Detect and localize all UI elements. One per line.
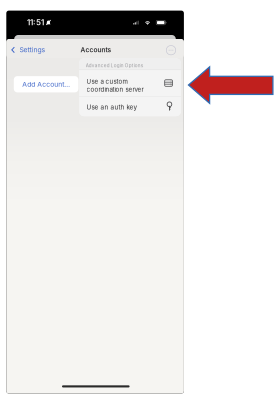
button[interactable]: Use a custom (79, 70, 181, 96)
button[interactable]: Add Account… (14, 76, 78, 92)
staticText: Use a custom (86, 78, 127, 85)
staticText: Accounts (80, 46, 111, 54)
button[interactable]: More options (164, 43, 178, 57)
staticText: Advanced Login Options (86, 63, 143, 68)
button[interactable]: Use an auth key (79, 96, 181, 116)
staticText: Settings (19, 46, 45, 54)
staticText: Add Account… (22, 80, 70, 88)
button[interactable]: Settings (9, 41, 48, 58)
staticText: coordination server (86, 86, 143, 93)
staticText: Use an auth key (86, 103, 137, 111)
staticText: 11:51 (27, 18, 44, 27)
